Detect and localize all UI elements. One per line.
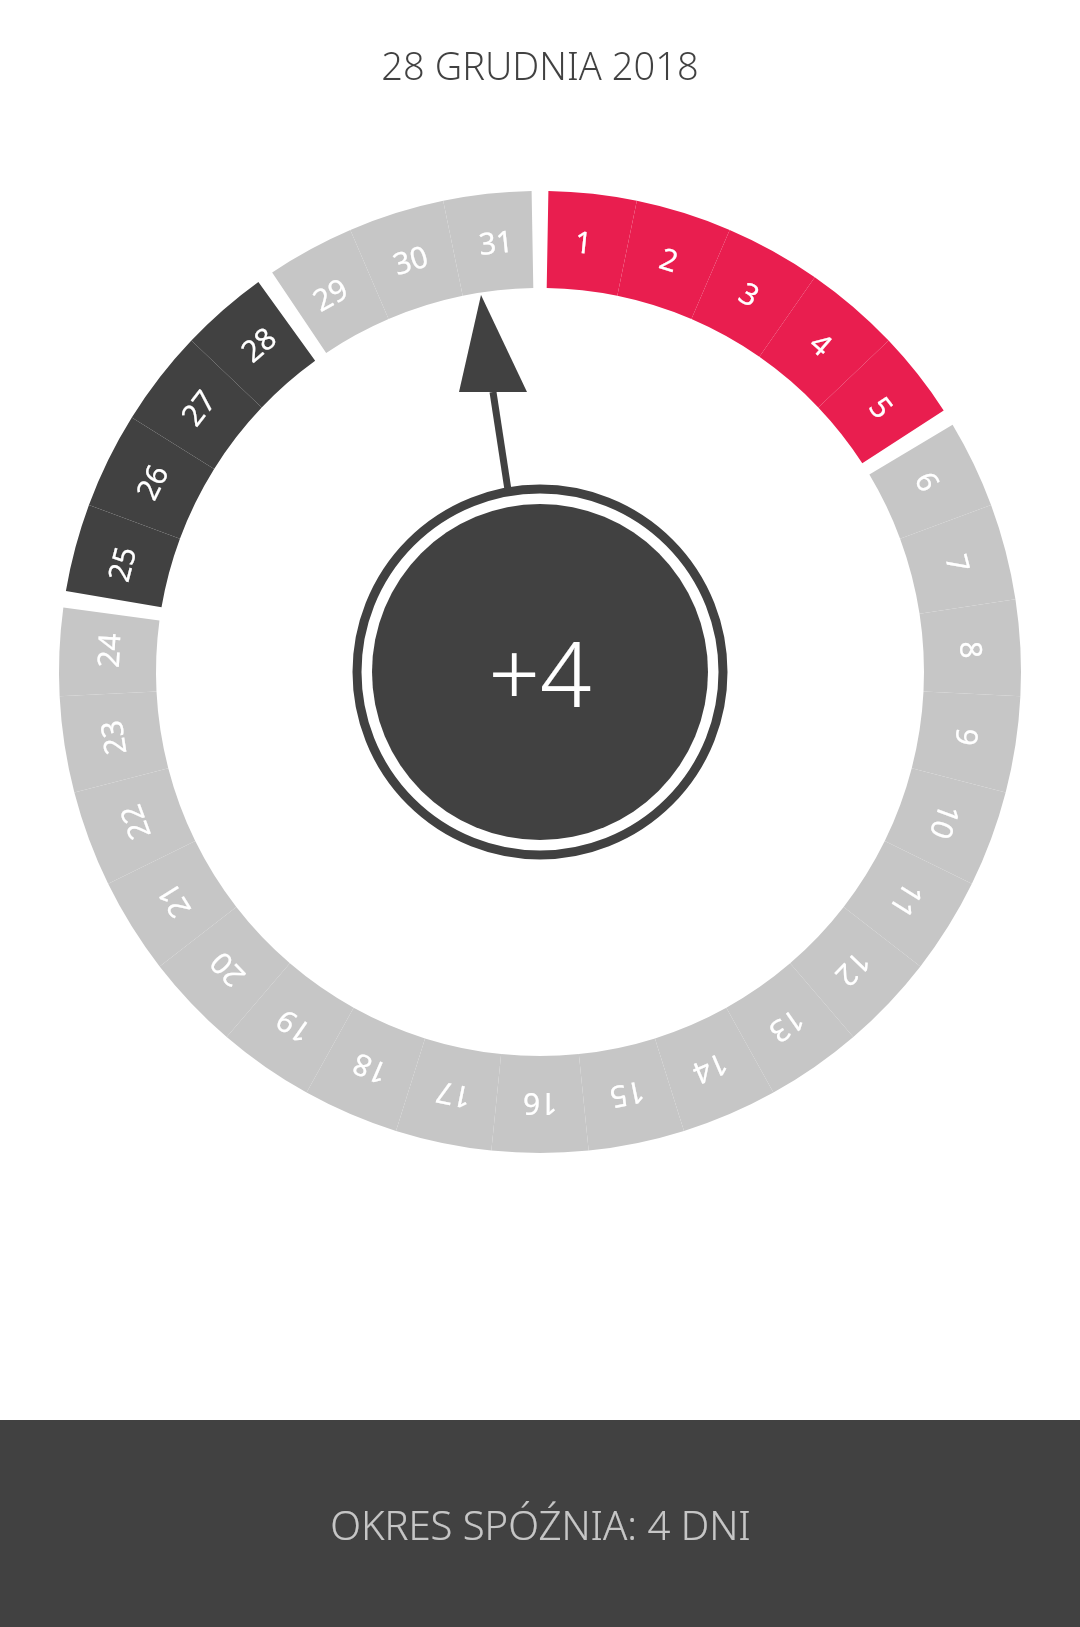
staticText: OKRES SPÓŹNIA: 4 DNI [330, 1497, 751, 1551]
staticText: 28 GRUDNIA 2018 [381, 39, 699, 91]
button[interactable]: Cycle day dial, day 28, 4 days late [0, 130, 1080, 1420]
button[interactable]: OKRES SPÓŹNIA: 4 DNI [0, 1420, 1080, 1627]
